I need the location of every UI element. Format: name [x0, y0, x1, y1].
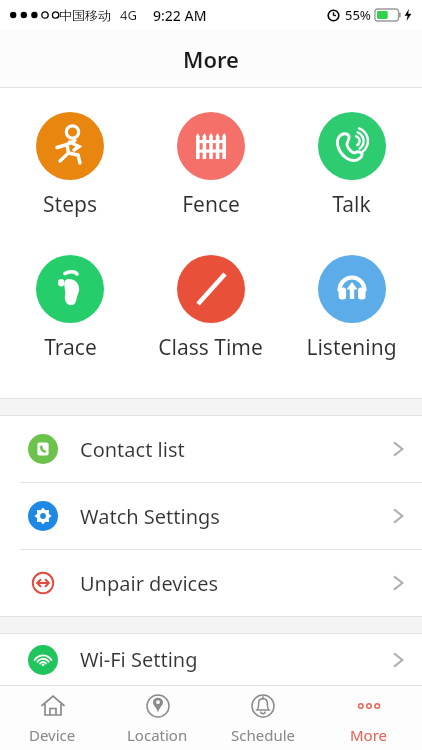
staticText: Contact list [80, 436, 185, 463]
staticText: Fence [182, 190, 240, 219]
staticText: Listening [306, 333, 397, 362]
button[interactable]: Unpair devices [0, 550, 422, 616]
button[interactable]: Device [0, 686, 105, 750]
staticText: Trace [44, 333, 97, 362]
button[interactable]: Class Time [140, 253, 281, 364]
button[interactable]: Listening [281, 253, 422, 364]
button[interactable]: Contact list [0, 416, 422, 482]
staticText: More [183, 44, 239, 74]
staticText: Device [29, 725, 76, 745]
staticText: 4G [120, 6, 137, 24]
button[interactable]: More [316, 686, 422, 750]
other: Location [143, 691, 173, 721]
other: More [354, 691, 384, 721]
staticText: Watch Settings [80, 503, 220, 530]
staticText: Steps [43, 190, 97, 219]
staticText: 9:22 AM [153, 6, 207, 25]
other: Schedule [248, 691, 278, 721]
other: Device [38, 691, 68, 721]
button[interactable]: Wi-Fi Setting [0, 634, 422, 685]
staticText: Schedule [231, 725, 295, 745]
button[interactable]: Schedule [210, 686, 316, 750]
button[interactable]: Location [105, 686, 210, 750]
button[interactable]: Steps [0, 110, 140, 221]
staticText: 中国移动 [59, 7, 111, 23]
button[interactable]: Trace [0, 253, 140, 364]
staticText: Class Time [158, 333, 263, 362]
staticText: Location [127, 725, 188, 745]
staticText: 55% [345, 6, 371, 24]
button[interactable]: Fence [140, 110, 281, 221]
staticText: Talk [332, 190, 371, 219]
staticText: Unpair devices [80, 570, 219, 597]
button[interactable]: Talk [281, 110, 422, 221]
button[interactable]: Watch Settings [0, 483, 422, 549]
staticText: Wi-Fi Setting [80, 646, 198, 673]
staticText: More [350, 725, 388, 745]
